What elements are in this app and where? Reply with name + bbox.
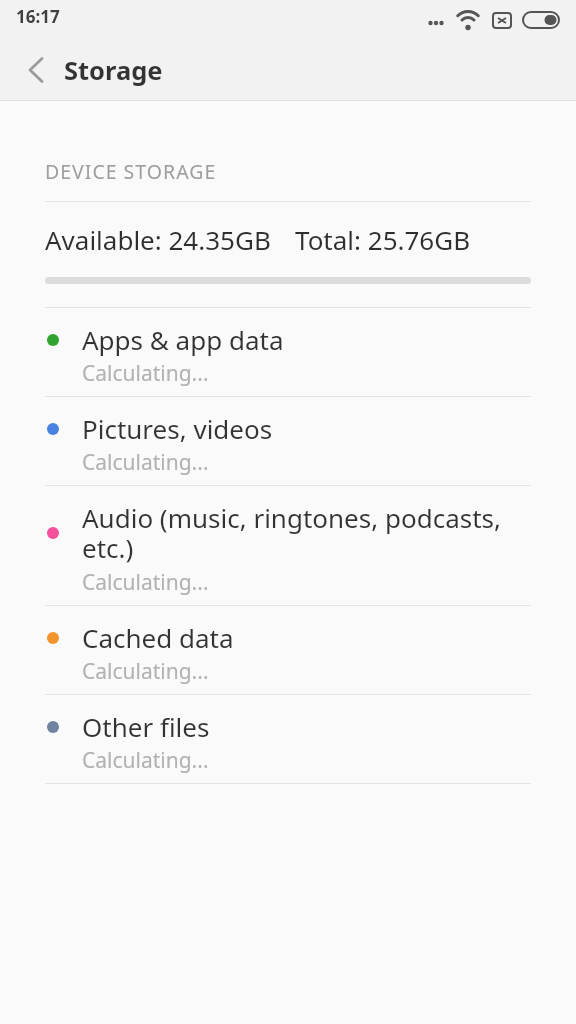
- button[interactable]: Pictures, videos: [0, 397, 576, 485]
- staticText: Apps & app data: [82, 322, 284, 357]
- button[interactable]: Apps & app data: [0, 308, 576, 396]
- button[interactable]: Audio (music, ringtones, podcasts, etc.): [0, 486, 576, 605]
- staticText: 16:17: [16, 5, 60, 28]
- staticText: Calculating...: [82, 359, 209, 388]
- staticText: Pictures, videos: [82, 411, 273, 446]
- button[interactable]: Other files: [0, 695, 576, 783]
- staticText: Calculating...: [82, 448, 209, 477]
- staticText: Audio (music, ringtones, podcasts, etc.): [82, 500, 501, 566]
- staticText: Other files: [82, 709, 210, 744]
- staticText: DEVICE STORAGE: [45, 158, 217, 185]
- staticText: Storage: [64, 53, 163, 88]
- button[interactable]: [0, 40, 64, 100]
- button[interactable]: Cached data: [0, 606, 576, 694]
- staticText: Calculating...: [82, 746, 209, 775]
- staticText: Calculating...: [82, 568, 209, 597]
- staticText: Calculating...: [82, 657, 209, 686]
- staticText: Total: 25.76GB: [295, 222, 471, 257]
- staticText: Available: 24.35GB: [45, 222, 271, 257]
- staticText: Cached data: [82, 620, 234, 655]
